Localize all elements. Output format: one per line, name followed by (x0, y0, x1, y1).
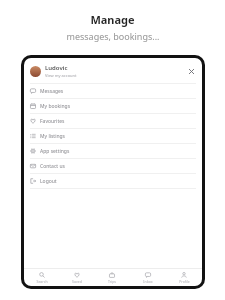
button[interactable]: Ludovic (24, 58, 202, 83)
staticText: Profile (179, 279, 190, 284)
button[interactable]: My bookings (24, 99, 202, 113)
button[interactable]: Logout (24, 174, 202, 188)
staticText: My listings (40, 133, 66, 140)
staticText: View my account (45, 73, 77, 78)
staticText: Trips (108, 279, 116, 284)
staticText: Favourites (40, 118, 65, 125)
staticText: messages, bookings... (66, 30, 160, 42)
button[interactable]: Search (24, 269, 59, 286)
button[interactable]: Close (186, 66, 196, 76)
staticText: Search (36, 279, 48, 284)
button[interactable]: App settings (24, 144, 202, 158)
button[interactable]: Contact us (24, 159, 202, 173)
button[interactable]: Profile (166, 269, 202, 286)
button[interactable]: Saved (59, 269, 94, 286)
button[interactable]: Favourites (24, 114, 202, 128)
staticText: Messages (40, 88, 64, 95)
staticText: My bookings (40, 103, 71, 110)
button[interactable]: Messages (24, 84, 202, 98)
staticText: Ludovic (45, 64, 68, 72)
button[interactable]: Trips (94, 269, 130, 286)
staticText: Saved (72, 279, 82, 284)
staticText: Logout (40, 178, 57, 185)
staticText: Manage (90, 12, 135, 27)
staticText: Inbox (143, 279, 153, 284)
button[interactable]: Inbox (130, 269, 166, 286)
staticText: Contact us (40, 163, 65, 170)
button[interactable]: My listings (24, 129, 202, 143)
staticText: App settings (40, 148, 70, 155)
